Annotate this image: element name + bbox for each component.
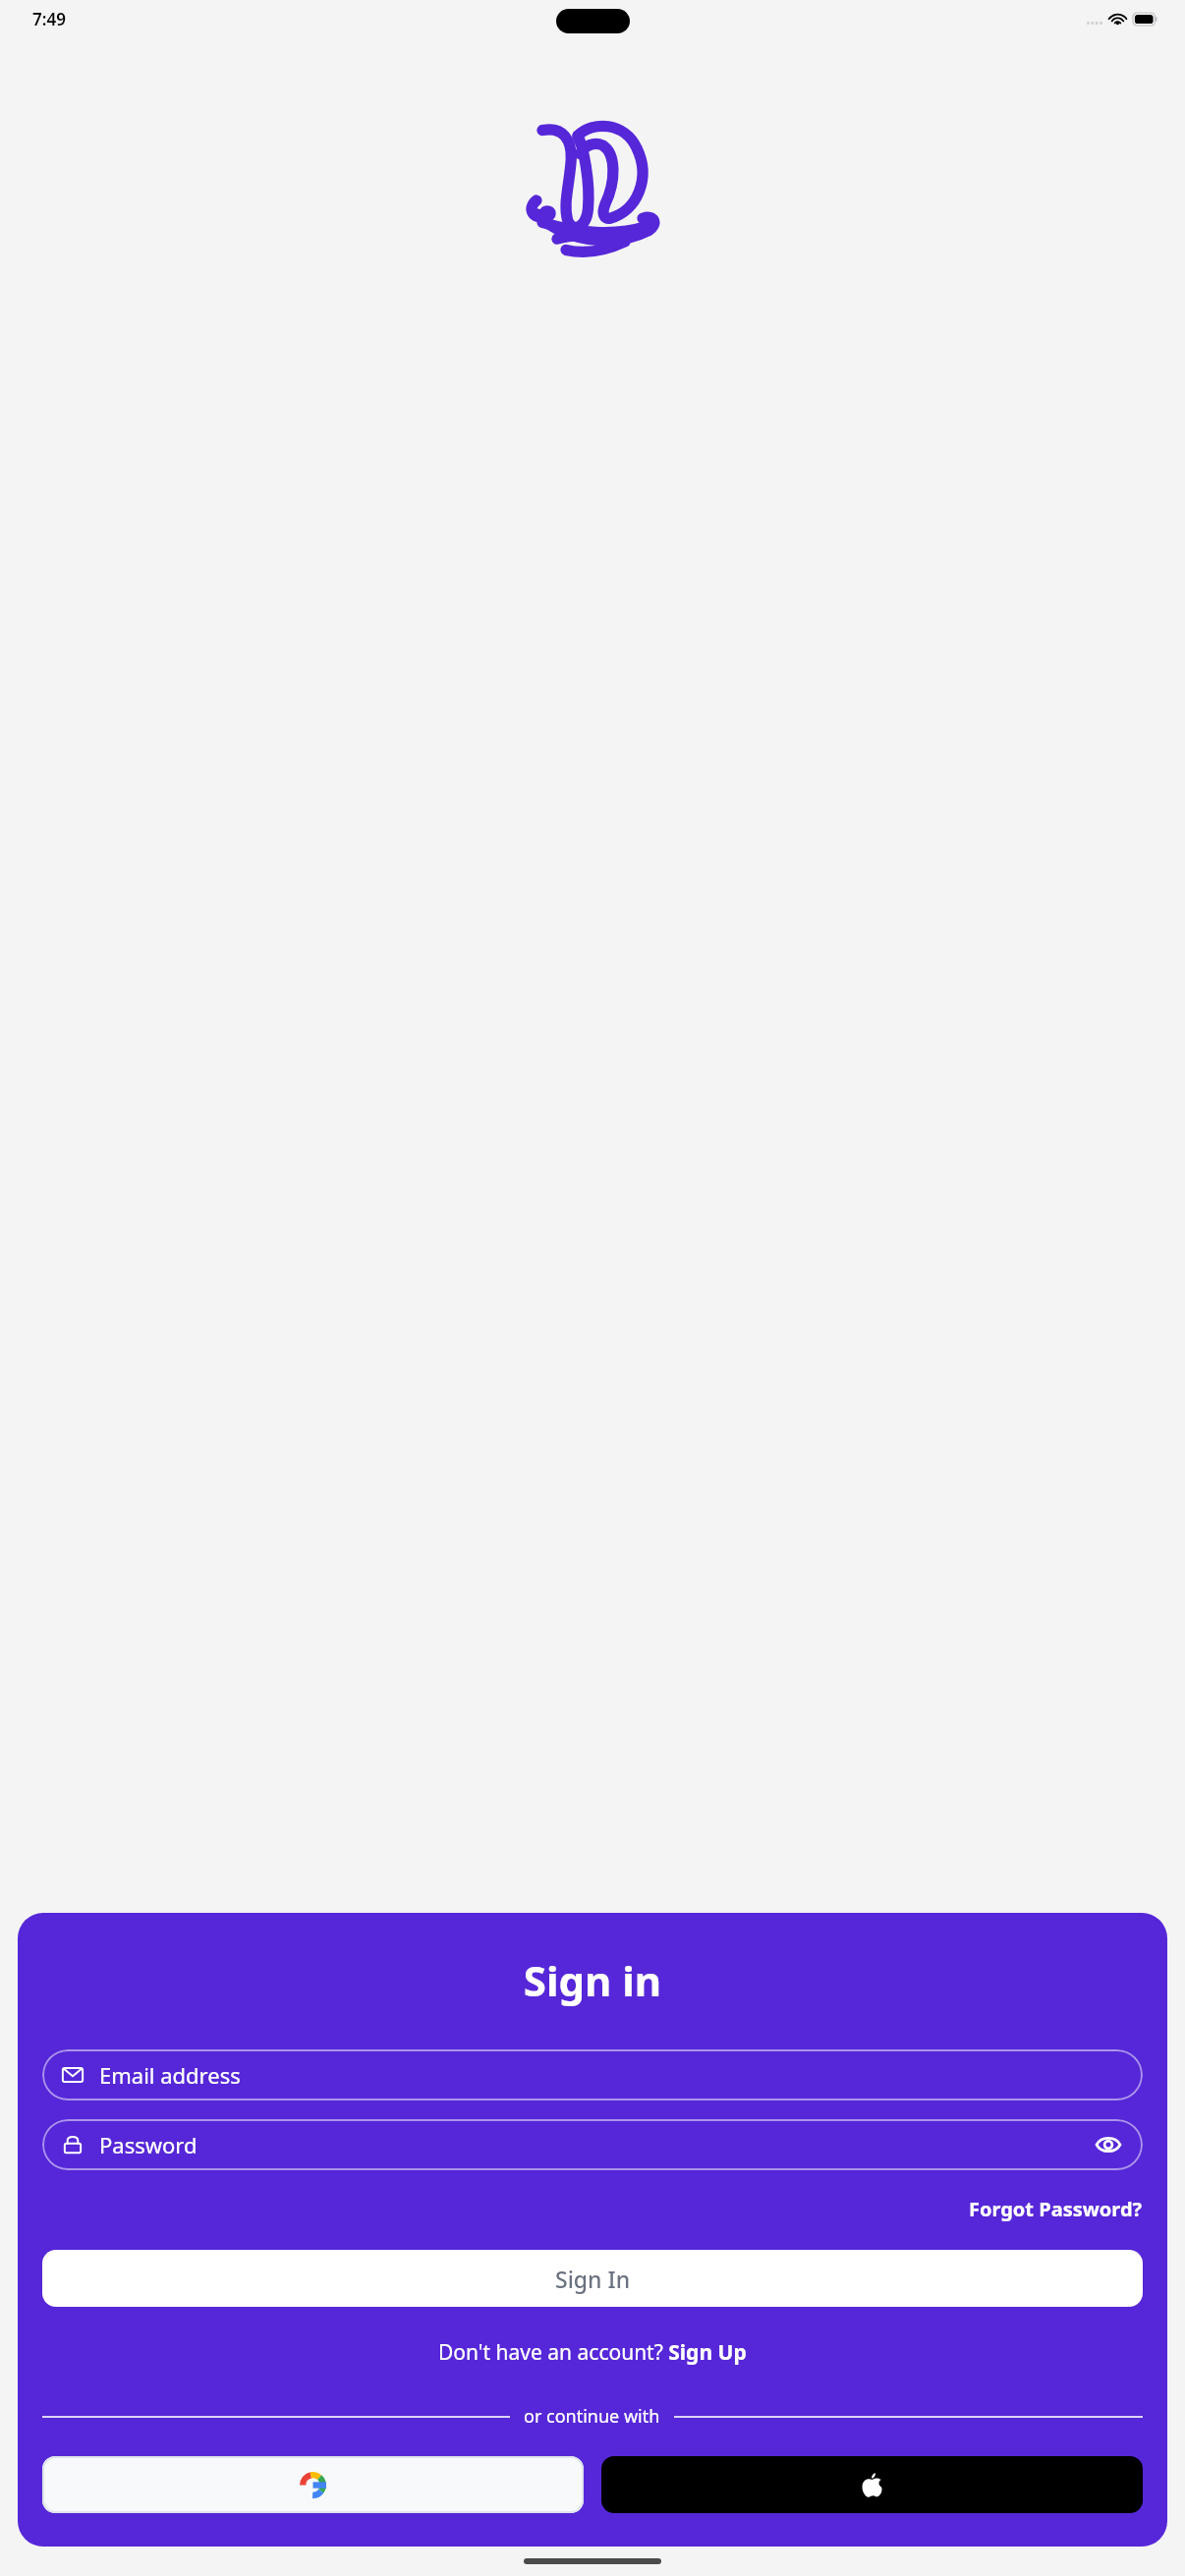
- staticText: Sign In: [555, 2264, 631, 2294]
- staticText: 7:49: [32, 8, 66, 30]
- button[interactable]: Forgot Password?: [969, 2192, 1143, 2226]
- button[interactable]: Email address: [42, 2049, 1143, 2100]
- staticText: Forgot Password?: [969, 2196, 1143, 2222]
- staticText: or continue with: [524, 2404, 660, 2429]
- button[interactable]: Continue with Apple: [601, 2456, 1143, 2513]
- staticText: Password: [99, 2130, 1094, 2159]
- staticText: Email address: [99, 2060, 1123, 2090]
- button[interactable]: Don't have an account? Sign Up: [42, 2338, 1143, 2367]
- button[interactable]: Continue with Google: [42, 2456, 584, 2513]
- staticText: Sign in: [42, 1952, 1143, 2008]
- button[interactable]: Show password: [1094, 2130, 1123, 2159]
- staticText: Don't have an account? Sign Up: [438, 2338, 747, 2367]
- button[interactable]: Password: [42, 2119, 1143, 2170]
- button[interactable]: Sign In: [42, 2250, 1143, 2307]
